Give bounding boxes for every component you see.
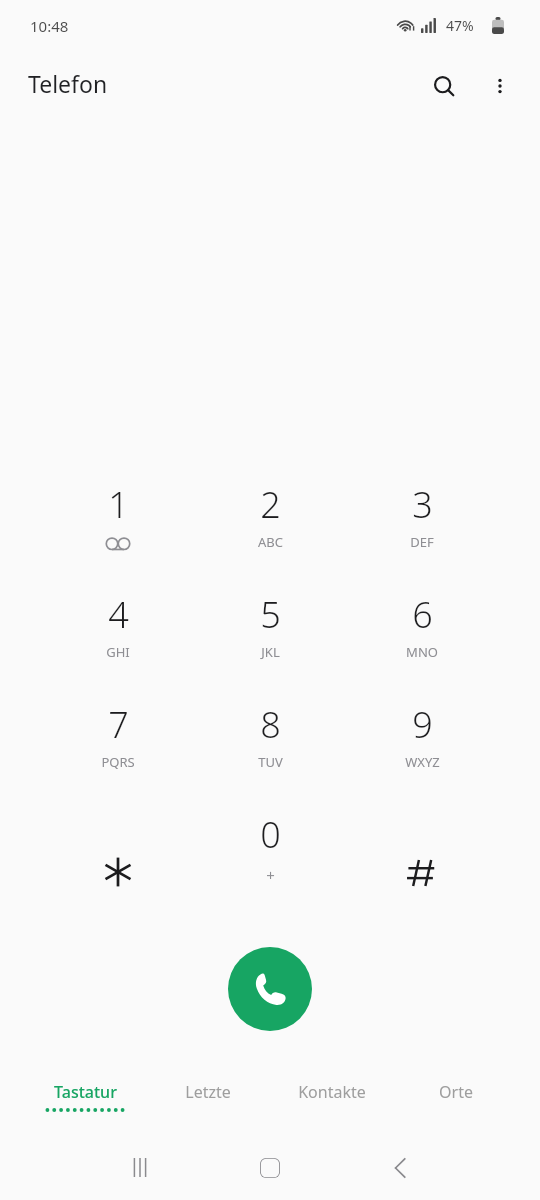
button[interactable]: 8 [206, 700, 334, 804]
button[interactable]: Back [355, 1140, 445, 1195]
staticText: 5 [260, 590, 281, 639]
button[interactable]: 7 [54, 700, 182, 804]
staticText: 8 [260, 700, 281, 749]
staticText: DEF [410, 533, 434, 551]
button[interactable]: Tastatur [23, 1063, 147, 1119]
button[interactable]: Orte [394, 1063, 518, 1119]
staticText: Letzte [185, 1081, 231, 1103]
staticText: WXYZ [405, 753, 440, 771]
staticText: MNO [406, 643, 438, 661]
staticText: 1 [108, 480, 129, 529]
button[interactable]: Letzte [146, 1063, 270, 1119]
button[interactable]: Kontakte [270, 1063, 394, 1119]
staticText: Orte [439, 1081, 473, 1103]
button[interactable]: Home [225, 1140, 315, 1195]
staticText: JKL [261, 643, 280, 661]
button[interactable] [358, 810, 486, 914]
staticText: 6 [412, 590, 433, 639]
staticText: Tastatur [54, 1081, 117, 1103]
staticText: 0 [260, 810, 281, 859]
staticText: 10:48 [30, 16, 69, 36]
button[interactable]: Recents [95, 1140, 185, 1195]
button[interactable]: 3 [358, 480, 486, 584]
staticText: 9 [412, 700, 433, 749]
staticText: + [266, 865, 275, 885]
staticText: Telefon [28, 68, 108, 99]
button[interactable] [54, 810, 182, 914]
staticText: ABC [258, 533, 283, 551]
button[interactable]: More options [476, 62, 524, 110]
button[interactable]: 5 [206, 590, 334, 694]
button[interactable]: Call [228, 947, 312, 1031]
button[interactable]: 0 [206, 810, 334, 914]
button[interactable]: Search [420, 62, 468, 110]
staticText: 7 [108, 700, 129, 749]
button[interactable]: 6 [358, 590, 486, 694]
staticText: GHI [106, 643, 130, 661]
button[interactable]: 2 [206, 480, 334, 584]
button[interactable]: 1 [54, 480, 182, 584]
staticText: Kontakte [298, 1081, 366, 1103]
staticText: PQRS [101, 753, 135, 771]
staticText: 47% [446, 16, 474, 35]
staticText: 4 [108, 590, 129, 639]
staticText: 2 [260, 480, 281, 529]
button[interactable]: 9 [358, 700, 486, 804]
staticText: 3 [412, 480, 433, 529]
button[interactable]: 4 [54, 590, 182, 694]
staticText: TUV [258, 753, 283, 771]
